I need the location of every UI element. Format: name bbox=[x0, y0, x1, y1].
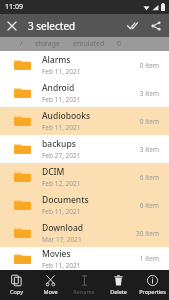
staticText: emulated bbox=[73, 39, 105, 49]
staticText: 3 item bbox=[139, 145, 159, 154]
staticText: Feb 11, 2021 bbox=[42, 207, 81, 216]
button[interactable]: Alarms bbox=[0, 51, 169, 79]
staticText: Delete bbox=[110, 288, 127, 295]
button[interactable]: DCIM bbox=[0, 163, 169, 191]
button[interactable]: Audiobooks bbox=[0, 107, 169, 135]
staticText: storage bbox=[35, 39, 61, 49]
staticText: Audiobooks bbox=[42, 110, 91, 122]
staticText: 6 item bbox=[139, 173, 159, 182]
button[interactable]: Close selection bbox=[0, 14, 23, 37]
button[interactable]: emulated bbox=[67, 39, 111, 49]
staticText: Movies bbox=[42, 248, 71, 260]
staticText: 1 item bbox=[139, 254, 159, 263]
staticText: Mar 17, 2021 bbox=[42, 235, 82, 244]
staticText: backups bbox=[42, 138, 76, 150]
staticText: Copy bbox=[10, 288, 23, 295]
staticText: / bbox=[20, 39, 23, 49]
staticText: Feb 11, 2021 bbox=[42, 95, 81, 104]
button[interactable]: Android bbox=[0, 79, 169, 107]
staticText: 11:09 bbox=[5, 2, 23, 12]
button[interactable]: Share bbox=[144, 14, 167, 37]
button[interactable]: Rename bbox=[67, 272, 101, 298]
button[interactable]: 0 bbox=[111, 39, 128, 49]
button[interactable]: Properties bbox=[135, 272, 169, 298]
staticText: 3 selected bbox=[28, 19, 121, 33]
staticText: Documents bbox=[42, 194, 89, 206]
button[interactable]: backups bbox=[0, 135, 169, 163]
button[interactable]: storage bbox=[29, 39, 67, 49]
button[interactable]: Movies bbox=[0, 247, 169, 270]
staticText: Feb 11, 2021 bbox=[42, 67, 81, 76]
staticText: 3 item bbox=[139, 89, 159, 98]
button[interactable]: Download bbox=[0, 219, 169, 247]
staticText: DCIM bbox=[42, 166, 65, 178]
button[interactable]: / bbox=[14, 39, 29, 49]
staticText: 30 item bbox=[136, 229, 159, 238]
staticText: Feb 11, 2021 bbox=[42, 261, 81, 270]
staticText: Feb 12, 2021 bbox=[42, 179, 81, 188]
staticText: 0 item bbox=[139, 61, 159, 70]
staticText: 0 item bbox=[139, 117, 159, 126]
staticText: Feb 27, 2021 bbox=[42, 151, 81, 160]
staticText: Download bbox=[42, 222, 84, 234]
button[interactable]: Delete bbox=[101, 272, 135, 298]
staticText: 0 bbox=[117, 39, 122, 49]
staticText: Move bbox=[43, 288, 58, 295]
staticText: 0 item bbox=[139, 201, 159, 210]
button[interactable]: Move bbox=[33, 272, 67, 298]
staticText: Alarms bbox=[42, 54, 71, 66]
button[interactable]: Select all bbox=[121, 14, 144, 37]
button[interactable]: Copy bbox=[0, 272, 33, 298]
staticText: Feb 11, 2021 bbox=[42, 123, 81, 132]
button[interactable]: Documents bbox=[0, 191, 169, 219]
staticText: Properties bbox=[139, 288, 166, 295]
staticText: Rename bbox=[73, 288, 95, 295]
staticText: Android bbox=[42, 82, 75, 94]
